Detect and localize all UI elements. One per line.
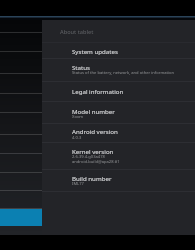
staticText: Android version — [72, 127, 118, 135]
staticText: Legal information — [72, 87, 124, 95]
button[interactable]: Settings section — [0, 154, 42, 173]
button[interactable]: Settings section — [0, 191, 42, 209]
button[interactable]: Settings section — [0, 52, 42, 74]
staticText: System updates — [72, 47, 118, 55]
staticText: IML77 — [72, 181, 84, 187]
staticText: 2.6.39.4-g03a478 — [72, 154, 105, 160]
button[interactable]: Settings section — [0, 74, 42, 94]
staticText: About tablet — [60, 28, 94, 36]
staticText: Build number — [72, 174, 112, 182]
button[interactable]: Settings section — [0, 113, 42, 135]
staticText: 4.0.3 — [72, 135, 82, 141]
button[interactable]: Build number — [42, 170, 195, 192]
staticText: Xoom — [72, 114, 84, 120]
button[interactable]: System updates — [42, 43, 195, 59]
staticText: Status of the battery, network, and othe… — [72, 70, 175, 76]
button[interactable]: Model number — [42, 102, 195, 124]
staticText: Kernel version — [72, 147, 114, 155]
button[interactable]: Status — [42, 59, 195, 82]
staticText: android-build@apa28 #1 — [72, 159, 120, 165]
staticText: Status — [72, 63, 90, 71]
staticText: Model number — [72, 107, 115, 115]
button[interactable]: Settings section — [0, 135, 42, 154]
button[interactable]: Settings section — [0, 94, 42, 113]
button[interactable]: Settings section — [0, 173, 42, 191]
button[interactable]: Android version — [42, 124, 195, 143]
button[interactable]: Settings section — [0, 33, 42, 52]
button[interactable]: Legal information — [42, 82, 195, 102]
button[interactable]: Kernel version — [42, 143, 195, 170]
button[interactable]: Settings section — [0, 20, 42, 33]
